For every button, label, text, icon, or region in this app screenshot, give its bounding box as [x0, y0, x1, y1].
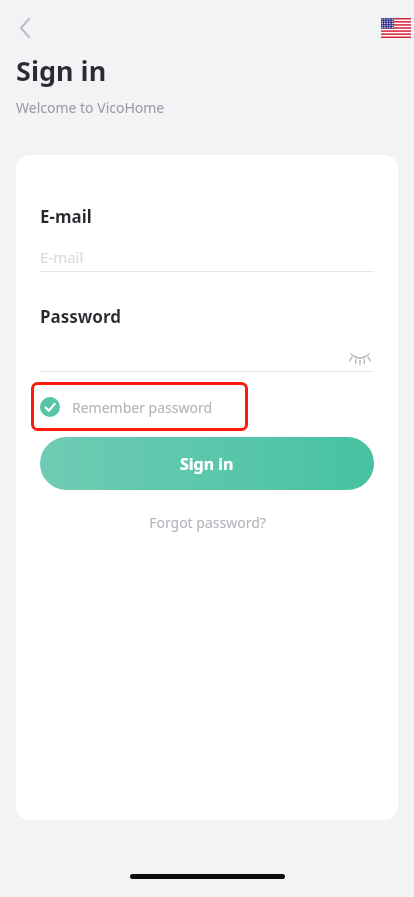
button[interactable]: Language: English (US): [381, 18, 411, 38]
staticText: Welcome to VicoHome: [16, 98, 165, 117]
button[interactable]: Forgot password?: [16, 510, 398, 534]
button[interactable]: Sign in: [40, 437, 374, 490]
button[interactable]: Remember password: [40, 393, 213, 421]
staticText: Remember password: [72, 398, 213, 417]
button[interactable]: E-mail: [40, 240, 374, 274]
button[interactable]: [40, 340, 374, 372]
staticText: E-mail: [40, 205, 92, 228]
staticText: Sign in: [16, 52, 107, 89]
button[interactable]: Back: [6, 10, 42, 46]
staticText: Forgot password?: [149, 513, 266, 532]
staticText: Password: [40, 305, 121, 328]
staticText: Sign in: [180, 453, 234, 475]
staticText: E-mail: [40, 247, 84, 267]
button[interactable]: Show password: [343, 341, 377, 371]
